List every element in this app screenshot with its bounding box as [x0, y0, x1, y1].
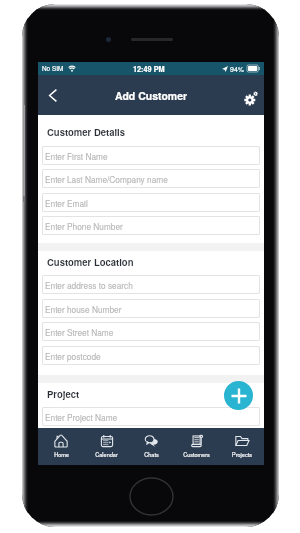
staticText: Customer Details [47, 125, 126, 139]
staticText: Enter First Name [45, 150, 108, 162]
button[interactable]: Enter Last Name/Company name [42, 169, 260, 188]
button[interactable]: Enter postcode [42, 346, 260, 365]
button[interactable]: Enter Street Name [42, 322, 260, 341]
staticText: 12:49 PM [133, 64, 165, 74]
staticText: Enter Project Name [45, 411, 118, 423]
button[interactable]: Settings [234, 75, 264, 115]
button[interactable]: Enter Phone Number [42, 216, 260, 235]
staticText: Customers [183, 451, 210, 459]
button[interactable]: Chats [129, 428, 174, 465]
staticText: Projects [232, 451, 252, 459]
staticText: Enter house Number [45, 303, 122, 315]
staticText: Enter Phone Number [45, 220, 123, 232]
staticText: Add Customer [115, 88, 188, 103]
button[interactable]: Enter Project Name [42, 407, 260, 426]
staticText: Enter postcode [45, 350, 101, 362]
staticText: 94% [230, 64, 245, 74]
staticText: Enter Last Name/Company name [45, 173, 168, 185]
staticText: Calendar [95, 451, 118, 459]
button[interactable]: Enter address to search [42, 275, 260, 294]
staticText: Home [54, 451, 69, 459]
button[interactable]: Enter First Name [42, 146, 260, 165]
staticText: Enter address to search [45, 279, 133, 291]
button[interactable]: Add [224, 381, 253, 410]
button[interactable]: Enter Email [42, 193, 260, 212]
staticText: Enter Street Name [45, 326, 114, 338]
button[interactable]: Calendar [84, 428, 129, 465]
button[interactable]: Home [38, 428, 84, 465]
staticText: Enter Email [45, 197, 88, 209]
staticText: Chats [144, 451, 159, 459]
staticText: No SIM [42, 64, 64, 73]
button[interactable]: Customers [174, 428, 219, 465]
button[interactable]: Enter house Number [42, 299, 260, 318]
staticText: Customer Location [47, 255, 134, 269]
staticText: Project [47, 387, 80, 401]
button[interactable]: Back [38, 75, 68, 115]
button[interactable]: Projects [219, 428, 264, 465]
